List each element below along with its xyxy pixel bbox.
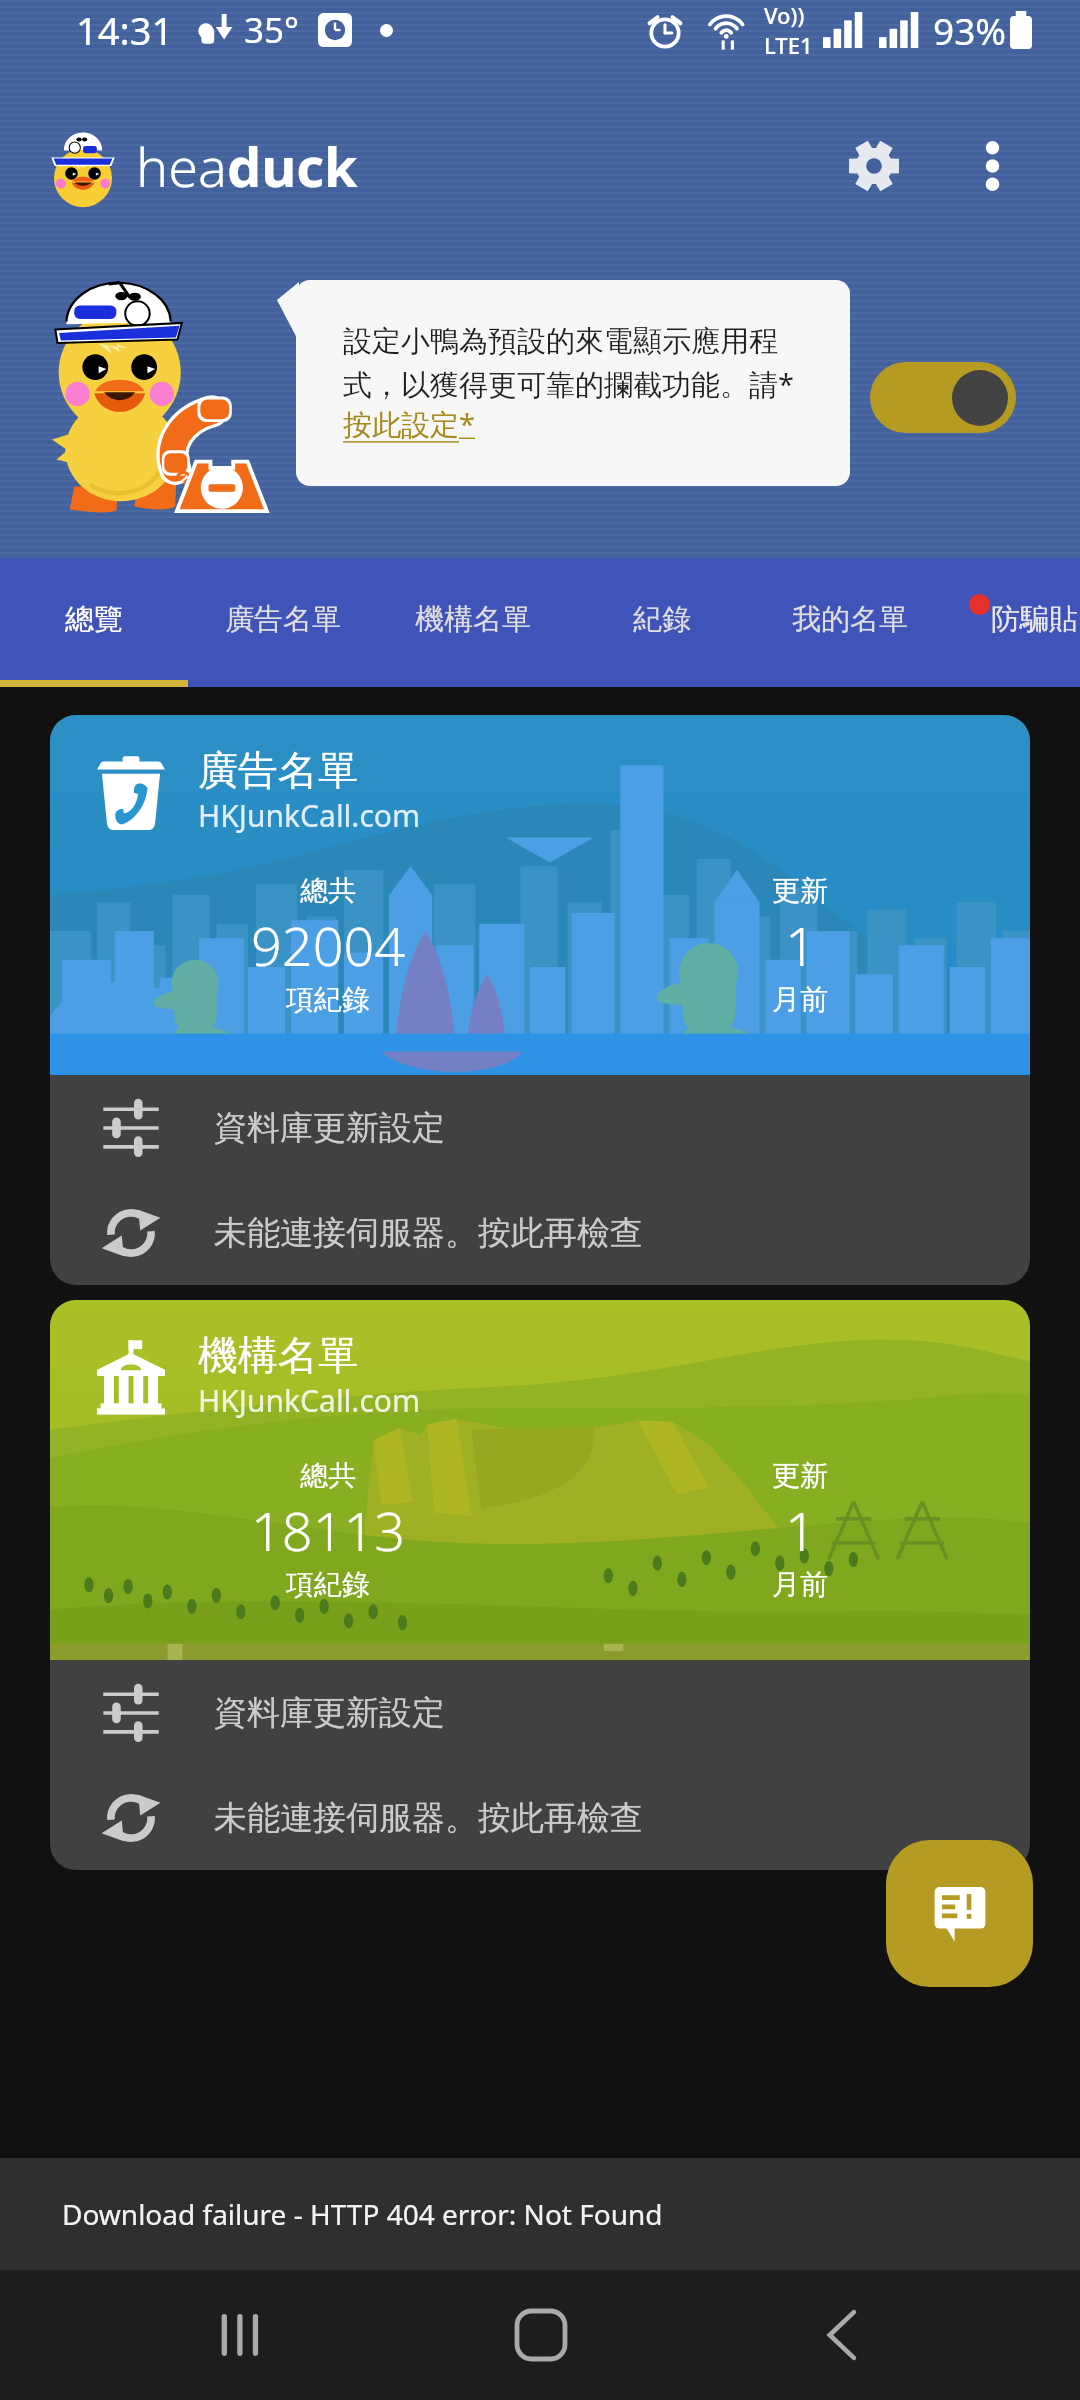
button[interactable]: More options	[950, 124, 1034, 208]
staticText: HKJunkCall.com	[198, 1380, 420, 1421]
button[interactable]: Home	[480, 2270, 602, 2400]
button[interactable]: Recent apps	[0, 2270, 480, 2400]
staticText: 防騙貼	[991, 601, 1078, 638]
button[interactable]: 總覽	[0, 558, 188, 680]
staticText: 未能連接伺服器。按此再檢查	[214, 1212, 643, 1254]
staticText: 設定小鴨為預設的來電顯示應用程式，以獲得更可靠的攔截功能。請*	[343, 323, 806, 404]
staticText: LTE1	[764, 30, 813, 60]
staticText: 總共	[300, 1458, 356, 1493]
staticText: 93%	[933, 5, 1007, 55]
button[interactable]: 資料庫更新設定	[50, 1660, 1030, 1765]
button[interactable]: Feedback	[886, 1840, 1033, 1987]
staticText: 項紀錄	[286, 982, 370, 1017]
staticText: 按此設定*	[343, 404, 475, 444]
staticText: 廣告名單	[198, 745, 358, 795]
staticText: 92004	[251, 908, 406, 982]
staticText: 更新	[772, 1458, 828, 1493]
button[interactable]: 未能連接伺服器。按此再檢查	[50, 1180, 1030, 1285]
staticText: 機構名單	[198, 1330, 358, 1380]
button[interactable]: 我的名單	[756, 558, 944, 680]
staticText: hea	[136, 129, 227, 203]
staticText: HKJunkCall.com	[198, 795, 420, 836]
button[interactable]: 紀錄	[568, 558, 756, 680]
staticText: 總覽	[65, 601, 123, 638]
staticText: 1	[785, 908, 816, 982]
button[interactable]: Enable caller ID	[870, 362, 1016, 433]
staticText: duck	[227, 129, 358, 203]
staticText: 機構名單	[415, 601, 531, 638]
button[interactable]: 未能連接伺服器。按此再檢查	[50, 1765, 1030, 1870]
staticText: 更新	[772, 873, 828, 908]
button[interactable]: Settings	[822, 114, 926, 218]
staticText: 總共	[300, 873, 356, 908]
staticText: 資料庫更新設定	[214, 1107, 445, 1149]
staticText: 資料庫更新設定	[214, 1692, 445, 1734]
button[interactable]: 機構名單	[50, 1300, 1030, 1660]
button[interactable]: 機構名單	[378, 558, 568, 680]
staticText: 項紀錄	[286, 1567, 370, 1602]
button[interactable]: 廣告名單	[188, 558, 378, 680]
button[interactable]: 資料庫更新設定	[50, 1075, 1030, 1180]
staticText: 廣告名單	[225, 601, 341, 638]
staticText: 18113	[251, 1493, 406, 1567]
staticText: 我的名單	[792, 601, 908, 638]
button[interactable]: 設定小鴨為預設的來電顯示應用程式，以獲得更可靠的攔截功能。請*	[296, 280, 850, 486]
staticText: 1	[785, 1493, 816, 1567]
button[interactable]: 防騙貼	[952, 558, 1080, 680]
staticText: Download failure - HTTP 404 error: Not F…	[62, 2195, 663, 2233]
staticText: 未能連接伺服器。按此再檢查	[214, 1797, 643, 1839]
staticText: 月前	[772, 1567, 828, 1602]
staticText: 月前	[772, 982, 828, 1017]
staticText: 紀錄	[633, 601, 691, 638]
staticText: 14:31	[76, 4, 174, 56]
staticText: Vo))	[764, 0, 805, 30]
staticText: 35°	[244, 6, 300, 54]
button[interactable]: 廣告名單	[50, 715, 1030, 1075]
button[interactable]: Back	[602, 2270, 1080, 2400]
